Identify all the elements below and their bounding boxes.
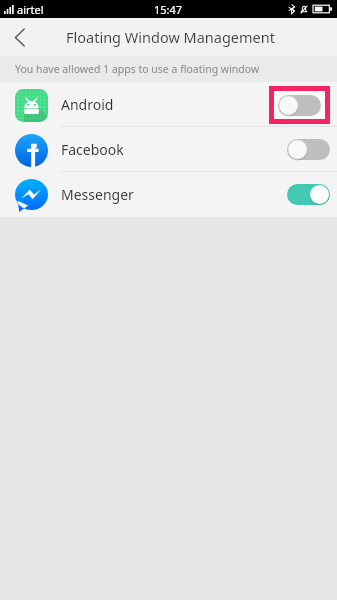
staticText: Android bbox=[61, 95, 114, 114]
staticText: Floating Window Management bbox=[66, 27, 275, 47]
button[interactable]: Turn off bbox=[287, 184, 330, 205]
button[interactable]: Facebook bbox=[0, 127, 337, 172]
staticText: Messenger bbox=[61, 185, 134, 204]
staticText: airtel bbox=[17, 2, 44, 17]
button[interactable]: Messenger bbox=[0, 172, 337, 217]
staticText: 15:47 bbox=[154, 2, 183, 17]
button[interactable]: Turn on bbox=[278, 95, 321, 116]
button[interactable]: Android bbox=[0, 82, 337, 127]
button[interactable]: Back bbox=[0, 18, 40, 56]
staticText: Facebook bbox=[61, 140, 124, 159]
staticText: You have allowed 1 apps to use a floatin… bbox=[15, 62, 260, 76]
button[interactable]: Turn on bbox=[287, 139, 330, 160]
